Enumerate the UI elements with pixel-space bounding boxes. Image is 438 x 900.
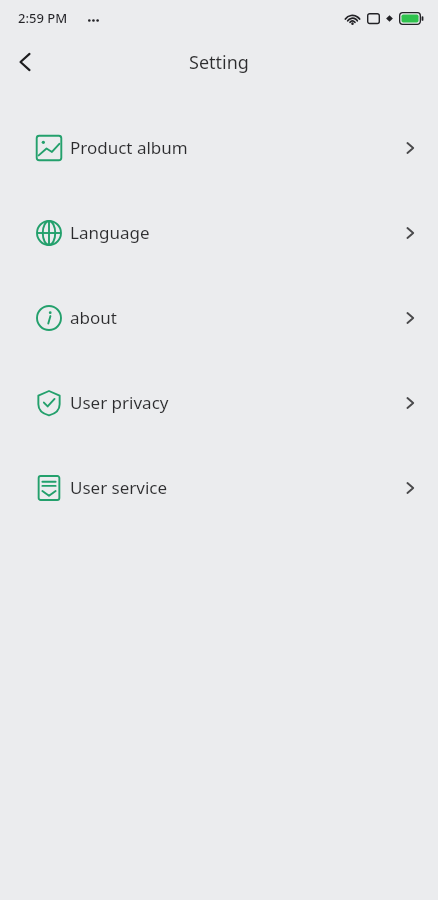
staticText: User privacy (70, 391, 169, 414)
staticText: Setting (189, 50, 249, 75)
button[interactable]: User service (0, 445, 438, 530)
staticText: Product album (70, 136, 188, 159)
button[interactable]: User privacy (0, 360, 438, 445)
staticText: User service (70, 476, 168, 499)
button[interactable]: Language (0, 190, 438, 275)
button[interactable]: Product album (0, 105, 438, 190)
staticText: about (70, 306, 117, 329)
button[interactable]: Back (0, 36, 52, 88)
button[interactable]: about (0, 275, 438, 360)
staticText: 2:59 PM (18, 9, 68, 27)
staticText: Language (70, 221, 150, 244)
